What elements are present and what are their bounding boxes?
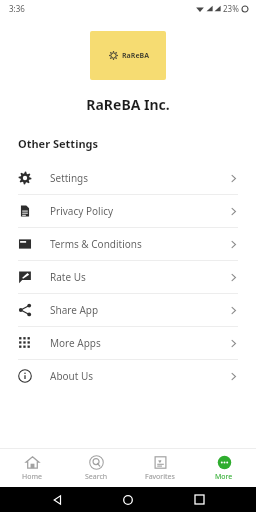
- staticText: Other Settings: [18, 136, 99, 151]
- button[interactable]: Rate Us: [0, 261, 256, 293]
- staticText: Home: [22, 472, 42, 482]
- staticText: Settings: [50, 171, 89, 185]
- button[interactable]: Recents: [186, 487, 212, 512]
- staticText: Privacy Policy: [50, 204, 114, 218]
- staticText: Favorites: [145, 472, 175, 482]
- staticText: RaReBA: [122, 51, 150, 61]
- button[interactable]: Home: [115, 487, 141, 512]
- button[interactable]: About Us: [0, 360, 256, 392]
- staticText: 3:36: [9, 3, 25, 14]
- button[interactable]: Home: [0, 449, 64, 487]
- button[interactable]: Share App: [0, 294, 256, 326]
- staticText: 23%: [223, 3, 239, 14]
- staticText: Share App: [50, 303, 99, 317]
- button[interactable]: Settings: [0, 162, 256, 194]
- button[interactable]: More: [192, 449, 256, 487]
- button[interactable]: More Apps: [0, 327, 256, 359]
- button[interactable]: Favorites: [128, 449, 192, 487]
- staticText: Rate Us: [50, 270, 86, 284]
- button[interactable]: Terms & Conditions: [0, 228, 256, 260]
- staticText: More: [215, 472, 233, 482]
- staticText: About Us: [50, 369, 94, 383]
- staticText: More Apps: [50, 336, 101, 350]
- staticText: Search: [85, 472, 108, 482]
- button[interactable]: Back: [45, 487, 71, 512]
- staticText: RaReBA Inc.: [86, 95, 170, 114]
- staticText: Terms & Conditions: [50, 237, 142, 251]
- button[interactable]: Privacy Policy: [0, 195, 256, 227]
- button[interactable]: Search: [64, 449, 128, 487]
